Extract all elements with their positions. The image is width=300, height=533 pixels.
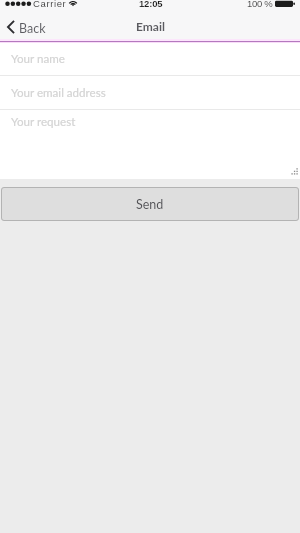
staticText: Carrier (33, 0, 67, 9)
staticText: 12:05 (139, 0, 163, 9)
staticText: Your request (11, 115, 76, 129)
staticText: Send (136, 197, 164, 212)
staticText: Email (136, 19, 165, 33)
staticText: Your email address (11, 86, 106, 100)
button[interactable]: Your email address (0, 76, 300, 109)
staticText: 100 % (247, 0, 273, 9)
button[interactable]: Back (3, 18, 51, 41)
button[interactable]: Your request (0, 110, 300, 179)
button[interactable]: Send (1, 187, 299, 221)
button[interactable]: Your name (0, 43, 300, 75)
staticText: Your name (11, 52, 65, 66)
staticText: Back (19, 21, 46, 36)
